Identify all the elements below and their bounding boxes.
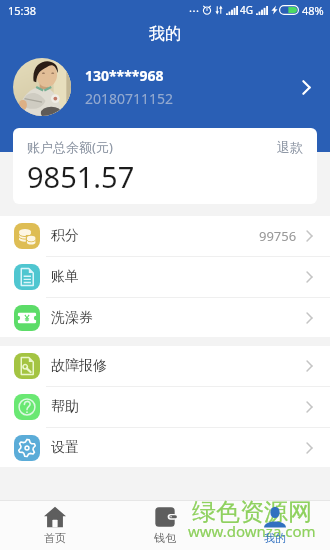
other: Account details <box>296 77 316 97</box>
staticText: 130****968 <box>85 66 164 85</box>
staticText: 帮助 <box>51 398 79 416</box>
staticText: 设置 <box>51 439 79 457</box>
button[interactable]: 账单 <box>14 257 313 297</box>
staticText: 20180711152 <box>85 89 174 108</box>
button[interactable]: 洗澡券 <box>14 298 313 337</box>
staticText: 积分 <box>51 227 79 245</box>
button[interactable]: 130****968 <box>13 56 316 118</box>
button[interactable]: 故障报修 <box>14 346 313 386</box>
staticText: 48% <box>302 3 324 18</box>
staticText: 99756 <box>259 227 297 245</box>
staticText: 首页 <box>44 531 66 545</box>
button[interactable]: 积分 <box>14 216 313 256</box>
staticText: 故障报修 <box>51 357 107 375</box>
staticText: 9851.57 <box>27 157 135 196</box>
button[interactable]: 我的 <box>220 500 330 550</box>
staticText: 钱包 <box>154 531 176 545</box>
staticText: 绿色资源网 <box>192 497 312 527</box>
button[interactable]: 钱包 <box>110 500 220 550</box>
button[interactable]: 账户总余额(元) <box>13 128 317 204</box>
staticText: 账单 <box>51 268 79 286</box>
staticText: www.downza.com <box>188 521 316 541</box>
button[interactable]: 设置 <box>14 428 313 467</box>
staticText: 15:38 <box>8 3 37 18</box>
staticText: 退款 <box>277 139 303 155</box>
staticText: 洗澡券 <box>51 309 93 327</box>
button[interactable]: 帮助 <box>14 387 313 427</box>
staticText: 我的 <box>264 531 286 545</box>
staticText: 账户总余额(元) <box>27 138 113 156</box>
staticText: 4G <box>240 3 253 17</box>
staticText: 我的 <box>149 24 181 44</box>
button[interactable]: 首页 <box>0 500 110 550</box>
